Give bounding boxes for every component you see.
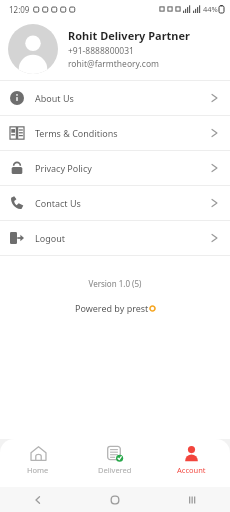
- button[interactable]: About Us: [0, 81, 230, 115]
- staticText: Account: [177, 465, 206, 475]
- other: Home: [110, 495, 120, 505]
- staticText: 44%: [203, 4, 218, 14]
- button[interactable]: Logout: [0, 221, 230, 255]
- staticText: Version 1.0 (5): [0, 278, 230, 289]
- staticText: +91-8888800031: [68, 45, 134, 57]
- button[interactable]: Account: [153, 445, 230, 487]
- staticText: Contact Us: [35, 197, 81, 209]
- staticText: Logout: [35, 232, 65, 244]
- other: Delivered: [106, 445, 123, 462]
- staticText: Delivered: [98, 465, 132, 475]
- other: Back: [33, 495, 43, 505]
- staticText: Privacy Policy: [35, 162, 92, 174]
- staticText: rohit@farmtheory.com: [68, 58, 160, 70]
- staticText: 12:09: [9, 4, 30, 15]
- staticText: Powered by prest: [75, 302, 149, 314]
- staticText: About Us: [35, 92, 74, 104]
- button[interactable]: Privacy Policy: [0, 151, 230, 185]
- other: Home: [30, 445, 47, 462]
- other: Recents: [187, 495, 197, 505]
- other: Account: [183, 445, 200, 462]
- button[interactable]: Contact Us: [0, 186, 230, 220]
- button[interactable]: Delivered: [76, 445, 153, 487]
- staticText: Rohit Delivery Partner: [68, 28, 191, 43]
- staticText: Terms & Conditions: [35, 127, 118, 139]
- button[interactable]: Home: [0, 445, 76, 487]
- staticText: Home: [27, 465, 49, 475]
- button[interactable]: Terms & Conditions: [0, 116, 230, 150]
